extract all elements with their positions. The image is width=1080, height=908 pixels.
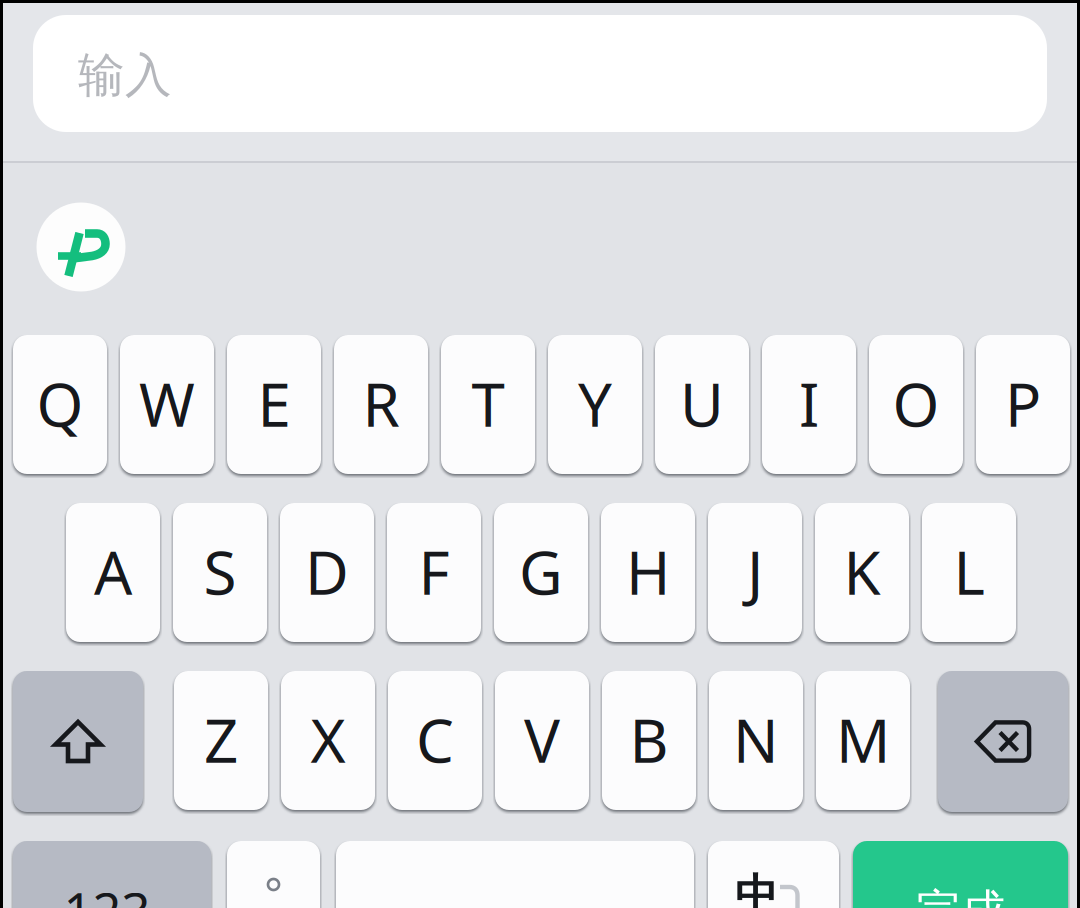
staticText: R <box>362 364 399 443</box>
button[interactable]: K <box>815 503 909 642</box>
button[interactable]: Q <box>13 335 107 474</box>
button[interactable]: 完成 <box>853 841 1068 908</box>
staticText: 输入 <box>78 47 172 104</box>
staticText: K <box>843 532 880 611</box>
staticText: X <box>310 700 345 779</box>
staticText: N <box>733 700 779 779</box>
staticText: D <box>305 532 349 611</box>
staticText: F <box>418 532 449 611</box>
staticText: Z <box>204 700 238 779</box>
button[interactable]: U <box>655 335 749 474</box>
button[interactable]: Shift <box>13 671 143 812</box>
staticText: G <box>519 532 563 611</box>
staticText: M <box>836 700 890 779</box>
staticText: J <box>747 532 763 611</box>
button[interactable]: S <box>173 503 267 642</box>
staticText: V <box>524 700 560 779</box>
staticText: Y <box>578 364 612 443</box>
button[interactable]: Z <box>174 671 268 810</box>
button[interactable]: E <box>227 335 321 474</box>
button[interactable]: R <box>334 335 428 474</box>
button[interactable]: Chinese / English <box>708 841 839 908</box>
button[interactable]: P <box>976 335 1070 474</box>
button[interactable]: 输入 <box>33 15 1047 132</box>
button[interactable]: B <box>602 671 696 810</box>
button[interactable]: Period <box>227 841 320 908</box>
staticText: C <box>416 700 454 779</box>
button[interactable]: A <box>66 503 160 642</box>
staticText: B <box>629 700 668 779</box>
button[interactable]: V <box>495 671 589 810</box>
button[interactable]: Input method <box>36 202 125 291</box>
button[interactable]: C <box>388 671 482 810</box>
staticText: H <box>626 532 670 611</box>
staticText: T <box>471 364 504 443</box>
button[interactable]: M <box>816 671 910 810</box>
staticText: 中 <box>735 869 778 908</box>
staticText: Q <box>36 364 83 443</box>
staticText: E <box>257 364 290 443</box>
staticText: L <box>953 532 984 611</box>
button[interactable]: T <box>441 335 535 474</box>
button[interactable]: G <box>494 503 588 642</box>
staticText: U <box>680 364 724 443</box>
staticText: O <box>892 364 939 443</box>
button[interactable]: Y <box>548 335 642 474</box>
staticText: W <box>139 364 195 443</box>
button[interactable]: Delete <box>938 671 1068 812</box>
staticText: 123 <box>63 877 150 908</box>
staticText: P <box>1005 364 1041 443</box>
button[interactable]: J <box>708 503 802 642</box>
button[interactable]: I <box>762 335 856 474</box>
staticText: I <box>799 364 819 443</box>
button[interactable]: F <box>387 503 481 642</box>
button[interactable]: 123 <box>13 841 211 908</box>
staticText: 完成 <box>915 884 1005 908</box>
button[interactable]: X <box>281 671 375 810</box>
staticText: S <box>203 532 236 611</box>
button[interactable]: D <box>280 503 374 642</box>
button[interactable]: W <box>120 335 214 474</box>
staticText: A <box>94 532 132 611</box>
button[interactable]: N <box>709 671 803 810</box>
button[interactable]: H <box>601 503 695 642</box>
button[interactable]: O <box>869 335 963 474</box>
button[interactable]: L <box>922 503 1016 642</box>
